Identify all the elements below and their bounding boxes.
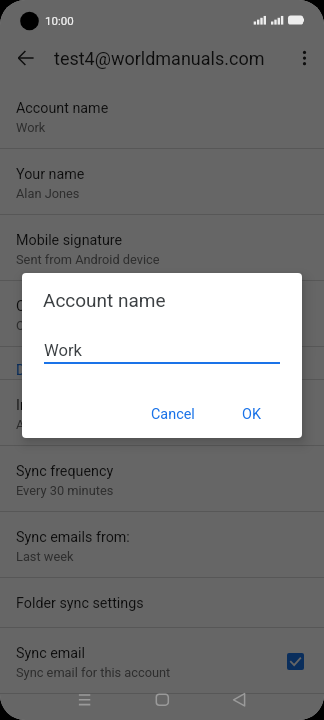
button[interactable]: Account name: [0, 83, 324, 149]
staticText: test4@worldmanuals.com: [54, 48, 265, 69]
staticText: 10:00: [45, 14, 74, 27]
button[interactable]: Sync email: [0, 628, 324, 694]
staticText: Data usage: [16, 362, 88, 379]
staticText: OK: [242, 406, 261, 423]
staticText: Mobile signature: [16, 232, 123, 249]
staticText: Cancel: [151, 406, 195, 423]
staticText: Folder sync settings: [16, 595, 144, 612]
staticText: Sent from Android device: [16, 252, 160, 267]
staticText: Every 30 minutes: [16, 483, 114, 498]
button[interactable]: Data usage: [0, 347, 324, 380]
button[interactable]: Sync frequency: [0, 446, 324, 512]
button[interactable]: Inbox check frequency: [0, 380, 324, 446]
button[interactable]: Back: [211, 680, 267, 720]
button[interactable]: Conversation view: [0, 281, 324, 347]
staticText: Work: [16, 120, 46, 135]
staticText: Sync emails from:: [16, 529, 130, 546]
staticText: Off: [16, 318, 34, 333]
staticText: Sync frequency: [16, 463, 114, 480]
button[interactable]: Your name: [0, 149, 324, 215]
staticText: Automatic (Push): [16, 417, 116, 432]
button[interactable]: Mobile signature: [0, 215, 324, 281]
button[interactable]: OK: [235, 400, 268, 429]
staticText: Account name: [16, 100, 109, 117]
button[interactable]: Sync emails from:: [0, 512, 324, 578]
staticText: Sync email: [16, 645, 86, 662]
staticText: Alan Jones: [16, 186, 80, 201]
staticText: Inbox check frequency: [16, 397, 159, 414]
button[interactable]: Cancel: [144, 400, 202, 429]
staticText: Last week: [16, 549, 74, 564]
button[interactable]: Home: [134, 680, 190, 720]
button[interactable]: Back: [8, 40, 43, 75]
button[interactable]: Folder sync settings: [0, 578, 324, 628]
staticText: Your name: [16, 166, 85, 183]
staticText: Work: [44, 341, 82, 360]
button[interactable]: Recent apps: [57, 680, 113, 720]
staticText: Sync email for this account: [16, 665, 171, 680]
staticText: Conversation view: [16, 298, 133, 315]
button[interactable]: More options: [286, 40, 321, 75]
staticText: Account name: [43, 289, 166, 311]
